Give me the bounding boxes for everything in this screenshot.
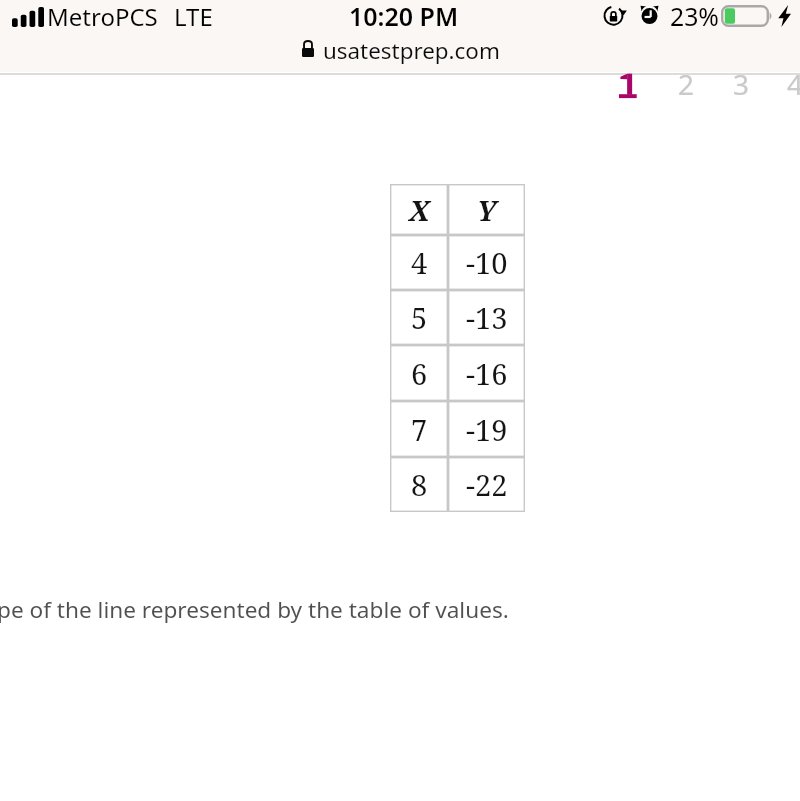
staticText: -16 bbox=[466, 354, 508, 393]
staticText: 8 bbox=[411, 465, 428, 504]
staticText: usatestprep.com bbox=[323, 35, 500, 66]
staticText: 3 bbox=[733, 65, 750, 103]
staticText: 2 bbox=[678, 65, 695, 103]
staticText: 10:20 PM bbox=[349, 0, 459, 33]
staticText: 4 bbox=[411, 243, 428, 282]
other: Signal strength bbox=[12, 7, 44, 27]
button[interactable]: Page 1 bbox=[607, 66, 649, 108]
staticText: X bbox=[409, 191, 430, 229]
staticText: LTE bbox=[174, 0, 213, 33]
other: Alarm bbox=[640, 5, 659, 24]
button[interactable]: 3 bbox=[721, 62, 761, 106]
staticText: Y bbox=[477, 191, 497, 229]
staticText: 23% bbox=[670, 0, 719, 33]
other: Battery 23 percent bbox=[721, 5, 774, 27]
staticText: 6 bbox=[411, 354, 428, 393]
staticText: pe of the line represented by the table … bbox=[0, 594, 509, 625]
staticText: 5 bbox=[411, 298, 428, 337]
staticText: -10 bbox=[466, 243, 508, 282]
button[interactable]: 2 bbox=[666, 62, 706, 106]
staticText: -22 bbox=[466, 465, 508, 504]
staticText: -19 bbox=[466, 410, 508, 449]
staticText: MetroPCS bbox=[47, 0, 158, 33]
other: Charging bbox=[778, 5, 791, 27]
staticText: 7 bbox=[411, 410, 428, 449]
other: Rotation lock bbox=[602, 4, 626, 28]
staticText: 4 bbox=[787, 65, 800, 103]
staticText: -13 bbox=[466, 298, 508, 337]
button[interactable]: 4 bbox=[775, 62, 800, 106]
button[interactable]: usatestprep.com bbox=[285, 34, 515, 66]
